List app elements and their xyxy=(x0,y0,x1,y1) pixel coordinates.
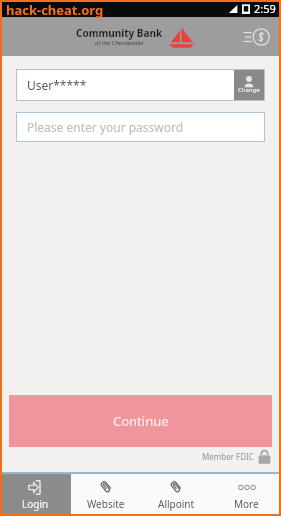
button[interactable]: Change user xyxy=(234,70,264,100)
staticText: Member FDIC xyxy=(202,451,254,462)
staticText: More xyxy=(234,497,259,511)
staticText: hack-cheat.org xyxy=(6,1,104,19)
staticText: User***** xyxy=(27,77,87,93)
button[interactable]: Continue xyxy=(9,395,272,447)
button[interactable]: Website xyxy=(71,474,141,516)
button[interactable]: Allpoint xyxy=(141,474,211,516)
staticText: of the Chesapeake xyxy=(95,39,144,47)
staticText: Change xyxy=(238,86,260,94)
staticText: Login xyxy=(22,497,49,511)
staticText: Community Bank xyxy=(76,26,163,40)
button[interactable]: Quick balance xyxy=(239,20,273,54)
button[interactable]: Login xyxy=(0,474,71,516)
staticText: 2:59 xyxy=(254,1,276,16)
staticText: Please enter your password xyxy=(27,119,184,135)
button[interactable]: More xyxy=(211,474,281,516)
staticText: Allpoint xyxy=(158,497,195,511)
staticText: Website xyxy=(87,497,125,511)
staticText: Continue xyxy=(113,412,169,430)
button[interactable]: User***** xyxy=(16,69,265,101)
button[interactable]: Please enter your password xyxy=(16,112,265,142)
